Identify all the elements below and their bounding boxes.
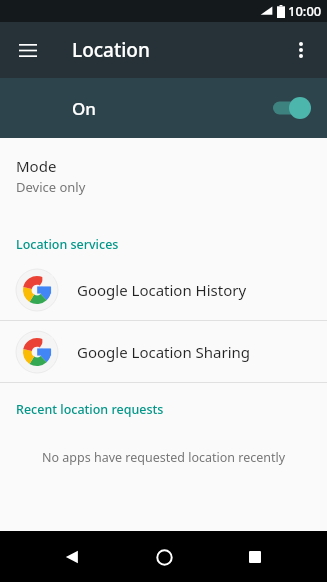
staticText: Device only — [16, 178, 86, 196]
staticText: Google Location History — [77, 280, 247, 300]
button[interactable]: Back — [50, 535, 94, 579]
staticText: 10:00 — [288, 2, 322, 20]
button[interactable]: On — [0, 78, 327, 138]
staticText: Mode — [16, 156, 57, 176]
button[interactable]: Google Location History — [0, 259, 327, 320]
button[interactable]: Recent apps — [233, 535, 277, 579]
staticText: No apps have requested location recently — [42, 449, 286, 466]
staticText: Google Location Sharing — [77, 342, 251, 362]
button[interactable]: Mode — [0, 138, 327, 210]
staticText: On — [72, 97, 96, 120]
button[interactable]: Open navigation drawer — [4, 26, 52, 74]
staticText: Recent location requests — [16, 401, 164, 418]
button[interactable]: Home — [142, 535, 186, 579]
staticText: Location — [72, 37, 150, 63]
button[interactable]: More options — [277, 26, 325, 74]
button[interactable]: Google Location Sharing — [0, 321, 327, 382]
staticText: Location services — [16, 236, 119, 253]
